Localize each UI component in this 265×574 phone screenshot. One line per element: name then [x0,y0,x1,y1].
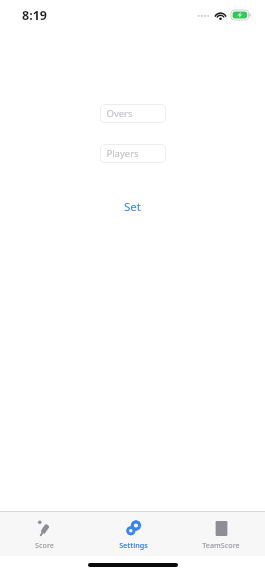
staticText: Overs [106,107,133,120]
staticText: Score [35,540,54,550]
other: Settings [124,519,143,538]
button[interactable]: Score [5,515,83,553]
button[interactable]: Set [114,196,151,218]
button[interactable]: Players [100,144,166,163]
button[interactable]: Settings [94,515,172,553]
staticText: Settings [119,540,148,550]
button[interactable]: TeamScore [182,515,260,553]
staticText: 8:19 [22,7,47,24]
staticText: Players [106,147,139,160]
other: TeamScore [212,519,231,538]
button[interactable]: Overs [100,104,166,123]
staticText: TeamScore [202,540,240,550]
other: Score [35,519,54,538]
staticText: Set [124,199,141,215]
